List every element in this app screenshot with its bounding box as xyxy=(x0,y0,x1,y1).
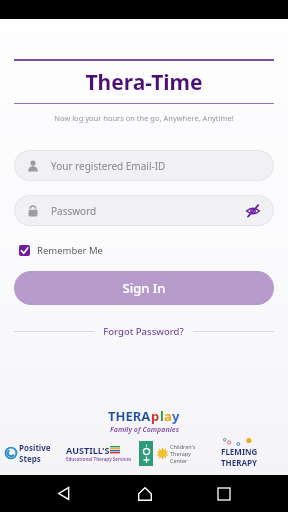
staticText: Password xyxy=(51,204,240,218)
staticText: Forgot Password? xyxy=(103,325,184,338)
staticText: l xyxy=(160,407,164,425)
staticText: Educational Therapy Services xyxy=(66,456,132,462)
staticText: y xyxy=(172,407,180,425)
staticText: Family of Companies xyxy=(110,425,179,435)
staticText: Remember Me xyxy=(37,244,103,257)
staticText: THERA xyxy=(108,407,151,425)
button[interactable]: Sign In xyxy=(14,271,274,305)
button[interactable]: Recent apps xyxy=(210,480,238,508)
button[interactable]: Password xyxy=(14,195,274,226)
staticText: AUSTILL'S xyxy=(66,444,110,456)
staticText: p xyxy=(151,407,160,425)
staticText: Now log your hours on the go, Anywhere, … xyxy=(0,113,288,123)
staticText: a xyxy=(164,407,172,425)
button[interactable]: Your registered Email-ID xyxy=(14,150,274,181)
button[interactable]: Back xyxy=(50,479,79,508)
staticText: Children's xyxy=(170,443,196,450)
staticText: THERAPY xyxy=(221,457,257,468)
staticText: Center xyxy=(170,457,188,464)
staticText: Positive xyxy=(19,442,51,453)
staticText: Thera-Time xyxy=(0,68,288,97)
staticText: Sign In xyxy=(122,279,166,297)
button[interactable]: Show password xyxy=(240,198,266,224)
staticText: Your registered Email-ID xyxy=(51,159,260,173)
staticText: Therapy xyxy=(170,450,191,457)
staticText: Steps xyxy=(19,453,41,464)
staticText: FLEMING xyxy=(221,446,258,457)
button[interactable]: Remember Me xyxy=(17,241,105,260)
button[interactable]: Home xyxy=(130,479,160,509)
button[interactable]: Forgot Password? xyxy=(94,322,193,341)
